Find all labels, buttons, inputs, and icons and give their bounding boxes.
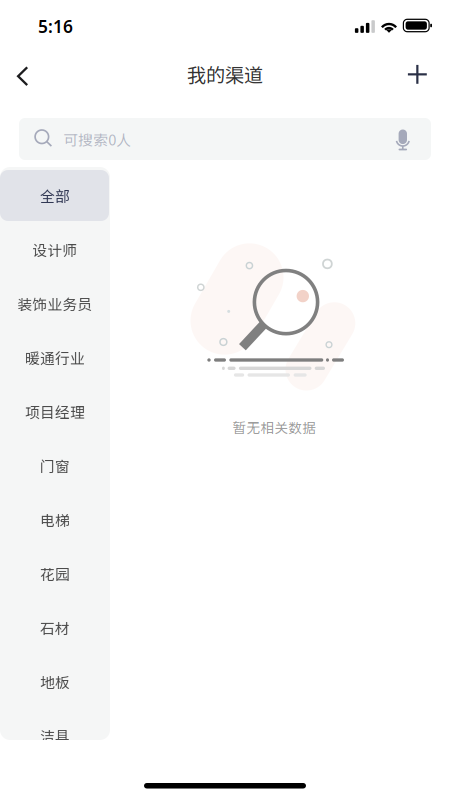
button[interactable]: 洁具 — [0, 707, 110, 761]
button[interactable]: 花园 — [0, 545, 110, 599]
button[interactable]: 全部 — [0, 167, 110, 221]
staticText: 地板 — [40, 671, 70, 692]
button[interactable]: 装饰业务员 — [0, 275, 110, 329]
button[interactable]: Add — [394, 48, 441, 100]
button[interactable]: Back — [0, 50, 45, 102]
button[interactable]: 门窗 — [0, 437, 110, 491]
staticText: 石材 — [40, 617, 70, 638]
staticText: 洁具 — [40, 725, 70, 746]
button[interactable]: 设计师 — [0, 221, 110, 275]
staticText: 设计师 — [32, 239, 77, 260]
staticText: 可搜索0人 — [63, 128, 131, 150]
staticText: 全部 — [40, 185, 70, 206]
button[interactable]: 地板 — [0, 653, 110, 707]
staticText: 花园 — [40, 563, 70, 584]
staticText: 暖通行业 — [25, 347, 85, 368]
button[interactable]: 可搜索0人 — [19, 118, 431, 160]
button[interactable]: 石材 — [0, 599, 110, 653]
staticText: 电梯 — [40, 509, 70, 530]
staticText: 我的渠道 — [187, 60, 263, 88]
staticText: 门窗 — [40, 455, 70, 476]
staticText: 5:16 — [38, 15, 73, 38]
staticText: 暂无相关数据 — [232, 417, 316, 437]
button[interactable]: 电梯 — [0, 491, 110, 545]
staticText: 装饰业务员 — [17, 293, 92, 314]
button[interactable]: 暖通行业 — [0, 329, 110, 383]
staticText: 项目经理 — [25, 401, 85, 422]
button[interactable]: 项目经理 — [0, 383, 110, 437]
